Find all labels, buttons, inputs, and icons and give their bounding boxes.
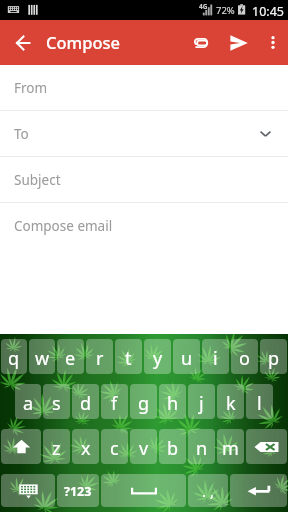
button[interactable]: To <box>0 111 288 156</box>
button[interactable]: m <box>217 429 244 464</box>
staticText: g <box>138 391 150 416</box>
button[interactable]: d <box>72 384 99 419</box>
staticText: Compose email <box>14 217 113 235</box>
staticText: d <box>80 391 92 416</box>
staticText: a <box>23 391 34 416</box>
staticText: j <box>199 391 204 416</box>
button[interactable]: More options <box>258 20 288 65</box>
staticText: r <box>96 346 104 371</box>
button[interactable]: n <box>188 429 215 464</box>
button[interactable]: q <box>1 339 27 374</box>
staticText: x <box>81 436 91 461</box>
staticText: 10:45 <box>252 3 284 20</box>
staticText: o <box>239 346 250 371</box>
button[interactable]: Shift <box>1 429 41 464</box>
staticText: y <box>153 346 163 371</box>
staticText: ?123 <box>64 483 92 500</box>
button[interactable]: y <box>144 339 171 374</box>
button[interactable]: b <box>159 429 186 464</box>
button[interactable]: f <box>101 384 128 419</box>
staticText: l <box>257 391 262 416</box>
button[interactable]: x <box>72 429 99 464</box>
button[interactable]: Backspace <box>246 429 287 464</box>
button[interactable]: v <box>130 429 157 464</box>
staticText: Subject <box>14 171 61 189</box>
button[interactable]: g <box>130 384 157 419</box>
button[interactable]: Send <box>220 20 258 65</box>
staticText: n <box>196 436 208 461</box>
staticText: h <box>167 391 179 416</box>
staticText: t <box>125 346 132 371</box>
staticText: q <box>8 346 20 371</box>
button[interactable]: Attach file <box>182 20 220 65</box>
button[interactable]: j <box>188 384 215 419</box>
staticText: b <box>167 436 179 461</box>
button[interactable]: e <box>57 339 84 374</box>
button[interactable]: From <box>0 65 288 110</box>
staticText: . , <box>202 481 214 501</box>
button[interactable]: o <box>231 339 258 374</box>
staticText: e <box>65 346 76 371</box>
button[interactable]: p <box>260 339 287 374</box>
staticText: Compose <box>46 31 120 53</box>
staticText: z <box>52 436 61 461</box>
staticText: k <box>226 391 236 416</box>
button[interactable]: k <box>217 384 244 419</box>
staticText: m <box>222 436 239 461</box>
button[interactable]: i <box>202 339 229 374</box>
button[interactable]: Enter <box>230 474 287 507</box>
button[interactable]: l <box>246 384 273 419</box>
button[interactable]: c <box>101 429 128 464</box>
button[interactable]: Space <box>101 474 186 507</box>
button[interactable]: h <box>159 384 186 419</box>
button[interactable]: w <box>29 339 55 374</box>
staticText: v <box>139 436 149 461</box>
button[interactable]: s <box>43 384 70 419</box>
staticText: 4G <box>199 2 208 11</box>
button[interactable]: Change keyboard <box>1 474 55 507</box>
staticText: i <box>213 346 218 371</box>
staticText: w <box>35 346 50 371</box>
button[interactable]: t <box>115 339 142 374</box>
button[interactable]: z <box>43 429 70 464</box>
staticText: p <box>268 346 280 371</box>
button[interactable]: Back <box>0 20 46 65</box>
button[interactable]: . , <box>188 474 228 507</box>
button[interactable]: ?123 <box>57 474 99 507</box>
staticText: From <box>14 79 48 97</box>
button[interactable]: Subject <box>0 157 288 202</box>
staticText: s <box>52 391 61 416</box>
staticText: 72% <box>216 4 235 17</box>
button[interactable]: a <box>15 384 41 419</box>
staticText: f <box>111 391 118 416</box>
staticText: c <box>110 436 119 461</box>
button[interactable]: u <box>173 339 200 374</box>
staticText: u <box>181 346 193 371</box>
button[interactable]: r <box>86 339 113 374</box>
staticText: To <box>14 125 29 143</box>
